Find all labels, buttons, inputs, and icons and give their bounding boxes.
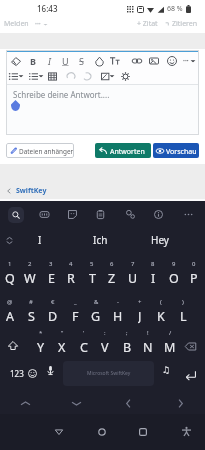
button[interactable]: Emoji (23, 364, 41, 382)
button[interactable]: Symbols (158, 362, 174, 378)
button[interactable]: SwiftKey (6, 185, 47, 196)
button[interactable]: @ (0, 297, 20, 327)
button[interactable]: Enter (181, 366, 199, 384)
button[interactable]: S (73, 53, 89, 69)
button[interactable]: Search (8, 207, 24, 223)
button[interactable]: ( (151, 297, 171, 327)
button[interactable]: Insert link (129, 53, 145, 69)
button[interactable]: + (130, 297, 150, 327)
button[interactable]: Dateien anhängen (6, 143, 74, 158)
button[interactable]: Backspace (180, 336, 200, 356)
staticText: R (67, 270, 75, 286)
button[interactable]: GIF (35, 205, 53, 223)
button[interactable]: - (108, 297, 128, 327)
button[interactable]: Move up (15, 393, 35, 413)
button[interactable]: 8 (143, 259, 163, 289)
button[interactable]: 0 (184, 259, 204, 289)
staticText: B (30, 55, 36, 67)
staticText: & (94, 298, 99, 306)
button[interactable]: 7 (123, 259, 143, 289)
staticText: 3 (49, 260, 53, 268)
button[interactable]: 6 (102, 259, 122, 289)
button[interactable]: Info (149, 205, 167, 223)
button[interactable]: Collapse toolbar (189, 57, 197, 65)
button[interactable]: More (179, 205, 197, 223)
button[interactable]: Bullet list (5, 68, 21, 84)
staticText: ) (182, 298, 184, 306)
staticText: Hey (151, 233, 169, 247)
button[interactable]: 9 (164, 259, 184, 289)
button[interactable]: B (25, 53, 41, 69)
button[interactable]: # (21, 297, 41, 327)
staticText: U (62, 55, 69, 67)
button[interactable]: Font size (107, 53, 123, 69)
staticText: 8 (151, 260, 155, 268)
button[interactable]: Hey (138, 229, 182, 251)
button[interactable]: 3 (41, 259, 61, 289)
button[interactable]: Antworten (95, 143, 151, 158)
button[interactable]: Ich (78, 229, 122, 251)
button[interactable]: : (95, 328, 115, 358)
staticText: 0 (192, 260, 196, 268)
button[interactable]: More (178, 53, 194, 69)
button[interactable]: Clear formatting (8, 53, 24, 69)
button[interactable]: Home (92, 422, 112, 442)
staticText: S (79, 55, 84, 67)
button[interactable]: Stickers (63, 205, 81, 223)
button[interactable]: Vorschau (153, 143, 199, 158)
button[interactable]: Move left (118, 393, 138, 413)
staticText: * (39, 329, 43, 337)
button[interactable]: ! (138, 328, 158, 358)
staticText: + (138, 298, 142, 306)
button[interactable]: Move right (170, 393, 190, 413)
button[interactable]: " (52, 328, 72, 358)
staticText: C (80, 339, 88, 355)
button[interactable]: Recents (133, 422, 153, 442)
button[interactable]: Clipboard (91, 205, 109, 223)
staticText: - (117, 298, 119, 306)
staticText: Microsoft SwiftKey (87, 370, 131, 377)
button[interactable]: Redo (79, 68, 95, 84)
button[interactable]: Insert media (97, 68, 113, 84)
button[interactable]: U (57, 53, 73, 69)
button[interactable]: Insert table (44, 68, 60, 84)
button[interactable]: Translate (121, 205, 139, 223)
staticText: 9 (172, 260, 176, 268)
staticText: K (157, 308, 165, 324)
button[interactable]: ; (117, 328, 137, 358)
button[interactable]: I (18, 229, 62, 251)
button[interactable]: / (160, 328, 180, 358)
staticText: W (24, 270, 36, 286)
button[interactable]: * (31, 328, 51, 358)
button[interactable]: Move down (66, 393, 86, 413)
button[interactable]: 4 (61, 259, 81, 289)
button[interactable]: 2 (20, 259, 40, 289)
button[interactable]: 5 (82, 259, 102, 289)
button[interactable]: Undo (63, 68, 79, 84)
button[interactable]: Insert emoji (164, 53, 180, 69)
button[interactable]: 1 (0, 259, 20, 289)
staticText: Q (5, 270, 15, 286)
button[interactable]: Shift (3, 336, 23, 356)
button[interactable]: Voice input (42, 361, 58, 379)
button[interactable]: & (86, 297, 106, 327)
button[interactable]: Insert image (146, 53, 162, 69)
button[interactable]: € (43, 297, 63, 327)
staticText: X (58, 339, 66, 355)
button[interactable]: Hide predictions (3, 234, 15, 246)
staticText: 7 (131, 260, 135, 268)
button[interactable]: Space (63, 361, 154, 386)
button[interactable]: _ (65, 297, 85, 327)
button[interactable]: Back (49, 422, 69, 442)
button[interactable]: Settings (117, 68, 133, 84)
button[interactable]: ' (74, 328, 94, 358)
staticText: V (101, 339, 109, 355)
button[interactable]: 123 (6, 364, 28, 382)
button[interactable]: Accessibility (177, 422, 195, 440)
button[interactable]: Numbered list (25, 68, 41, 84)
staticText: I (151, 270, 156, 286)
button[interactable]: ) (173, 297, 193, 327)
button[interactable]: I (41, 53, 57, 69)
staticText: # (29, 298, 33, 306)
button[interactable]: Text colour (91, 53, 107, 69)
